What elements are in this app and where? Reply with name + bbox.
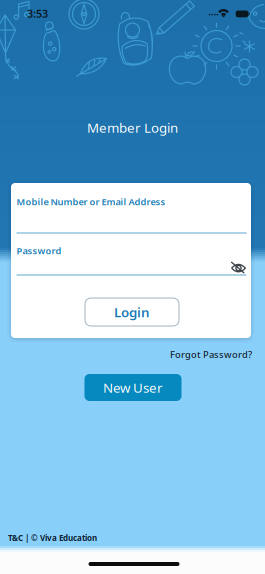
staticText: 3:53 xyxy=(27,6,48,21)
staticText: Password xyxy=(16,244,61,257)
button[interactable]: Login xyxy=(85,298,179,326)
button[interactable]: Mobile Number or Email Address xyxy=(16,195,246,233)
button[interactable]: Forgot Password? xyxy=(170,348,252,361)
staticText: Mobile Number or Email Address xyxy=(16,195,165,208)
staticText: T&C | © Viva Education xyxy=(8,533,97,543)
button[interactable]: Password xyxy=(16,244,246,275)
staticText: Login xyxy=(114,303,150,321)
staticText: New User xyxy=(103,379,163,396)
button[interactable]: Show password xyxy=(230,261,247,274)
staticText: Forgot Password? xyxy=(170,348,252,361)
staticText: Member Login xyxy=(87,119,178,136)
button[interactable]: New User xyxy=(84,374,181,401)
